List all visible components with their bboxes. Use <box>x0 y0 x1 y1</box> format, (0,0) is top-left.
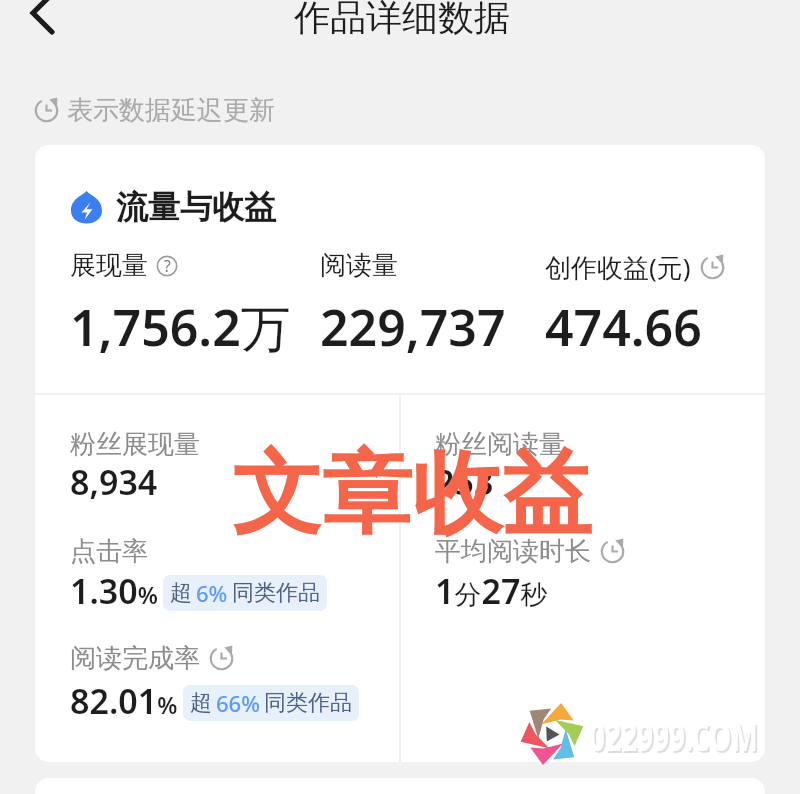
staticText: 粉丝阅读量 <box>435 428 565 461</box>
staticText: 66% <box>216 688 260 718</box>
staticText: 点击率 <box>70 535 148 568</box>
staticText: 022999.COM <box>589 708 758 762</box>
staticText: 82.01% <box>70 678 178 724</box>
staticText: 8,934 <box>70 459 158 505</box>
staticText: 超 <box>190 689 212 717</box>
staticText: 1.30% <box>70 568 158 614</box>
staticText: 作品详细数据 <box>294 0 510 40</box>
staticText: 阅读量 <box>320 249 398 282</box>
staticText: 229,737 <box>320 293 506 361</box>
staticText: 表示数据延迟更新 <box>67 94 275 127</box>
staticText: 6% <box>196 578 228 608</box>
button[interactable]: Back <box>10 0 70 47</box>
staticText: ? <box>164 256 171 277</box>
staticText: 253 <box>435 459 494 505</box>
staticText: 1分27秒 <box>435 568 548 614</box>
staticText: 阅读完成率 <box>70 642 200 675</box>
staticText: 创作收益(元) <box>545 249 691 285</box>
staticText: 超 <box>170 579 192 607</box>
staticText: 文章收益 <box>232 437 592 550</box>
staticText: 平均阅读时长 <box>435 535 591 568</box>
staticText: 粉丝展现量 <box>70 428 200 461</box>
staticText: 同类作品 <box>264 689 352 717</box>
staticText: 同类作品 <box>232 579 320 607</box>
staticText: 474.66 <box>545 293 702 361</box>
staticText: 022999.COM <box>591 710 760 764</box>
staticText: 流量与收益 <box>116 187 276 227</box>
staticText: 展现量 <box>70 249 148 282</box>
staticText: 1,756.2万 <box>70 293 291 361</box>
